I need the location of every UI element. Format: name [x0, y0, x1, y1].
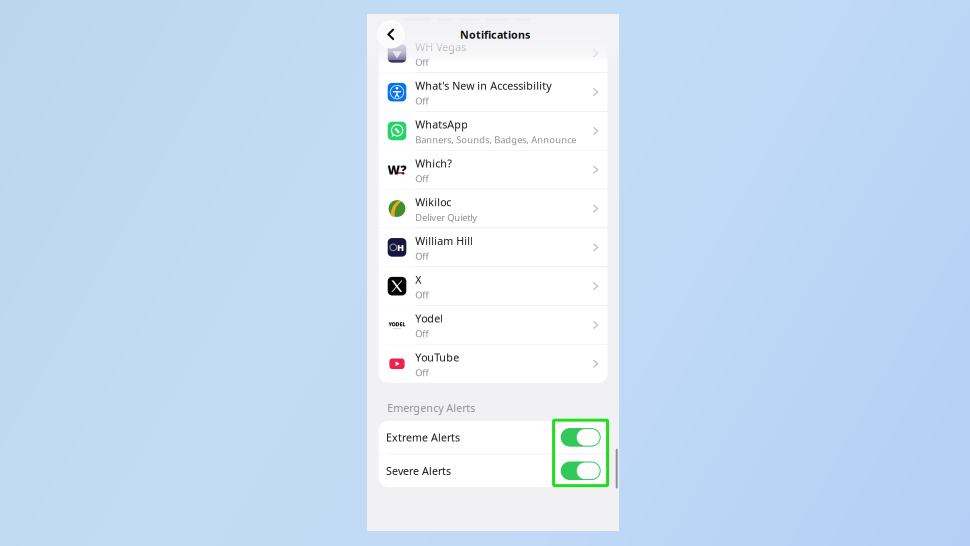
staticText: Off — [415, 366, 428, 379]
staticText: William Hill — [415, 234, 473, 248]
staticText: YouTube — [415, 350, 459, 364]
staticText: Yodel — [415, 311, 443, 326]
staticText: YODEL — [388, 321, 405, 328]
staticText: W? — [387, 162, 406, 178]
button[interactable]: WhatsApp — [378, 112, 607, 150]
staticText: Severe Alerts — [386, 464, 451, 478]
button[interactable]: X — [378, 267, 607, 305]
button[interactable]: WH Vegas — [378, 34, 607, 72]
button[interactable]: W? — [378, 151, 607, 189]
staticText: Off — [415, 289, 428, 301]
button[interactable]: YouTube — [378, 345, 607, 383]
button[interactable]: Back — [377, 20, 405, 48]
button[interactable]: What's New in Accessibility — [378, 73, 607, 111]
staticText: Emergency Alerts — [387, 401, 475, 415]
staticText: Banners, Sounds, Badges, Announce — [415, 133, 576, 146]
staticText: What's New in Accessibility — [415, 79, 551, 93]
staticText: Notifications — [460, 27, 530, 42]
staticText: Off — [415, 327, 428, 340]
button[interactable]: Extreme Alerts — [378, 421, 607, 454]
staticText: Deliver Quietly — [415, 211, 477, 223]
button[interactable]: Severe Alerts — [378, 454, 607, 487]
staticText: Off — [415, 250, 428, 262]
staticText: WhatsApp — [415, 117, 468, 132]
staticText: WH Vegas — [415, 40, 466, 54]
button[interactable]: YODEL — [378, 306, 607, 344]
staticText: Off — [415, 95, 428, 107]
staticText: Off — [415, 172, 428, 185]
staticText: Extreme Alerts — [386, 430, 460, 444]
button[interactable]: Wikiloc — [378, 189, 607, 228]
staticText: Which? — [415, 156, 452, 170]
staticText: H — [397, 241, 404, 254]
staticText: X — [415, 273, 421, 287]
button[interactable]: H — [378, 228, 607, 266]
staticText: Off — [415, 56, 428, 68]
staticText: Wikiloc — [415, 195, 451, 209]
